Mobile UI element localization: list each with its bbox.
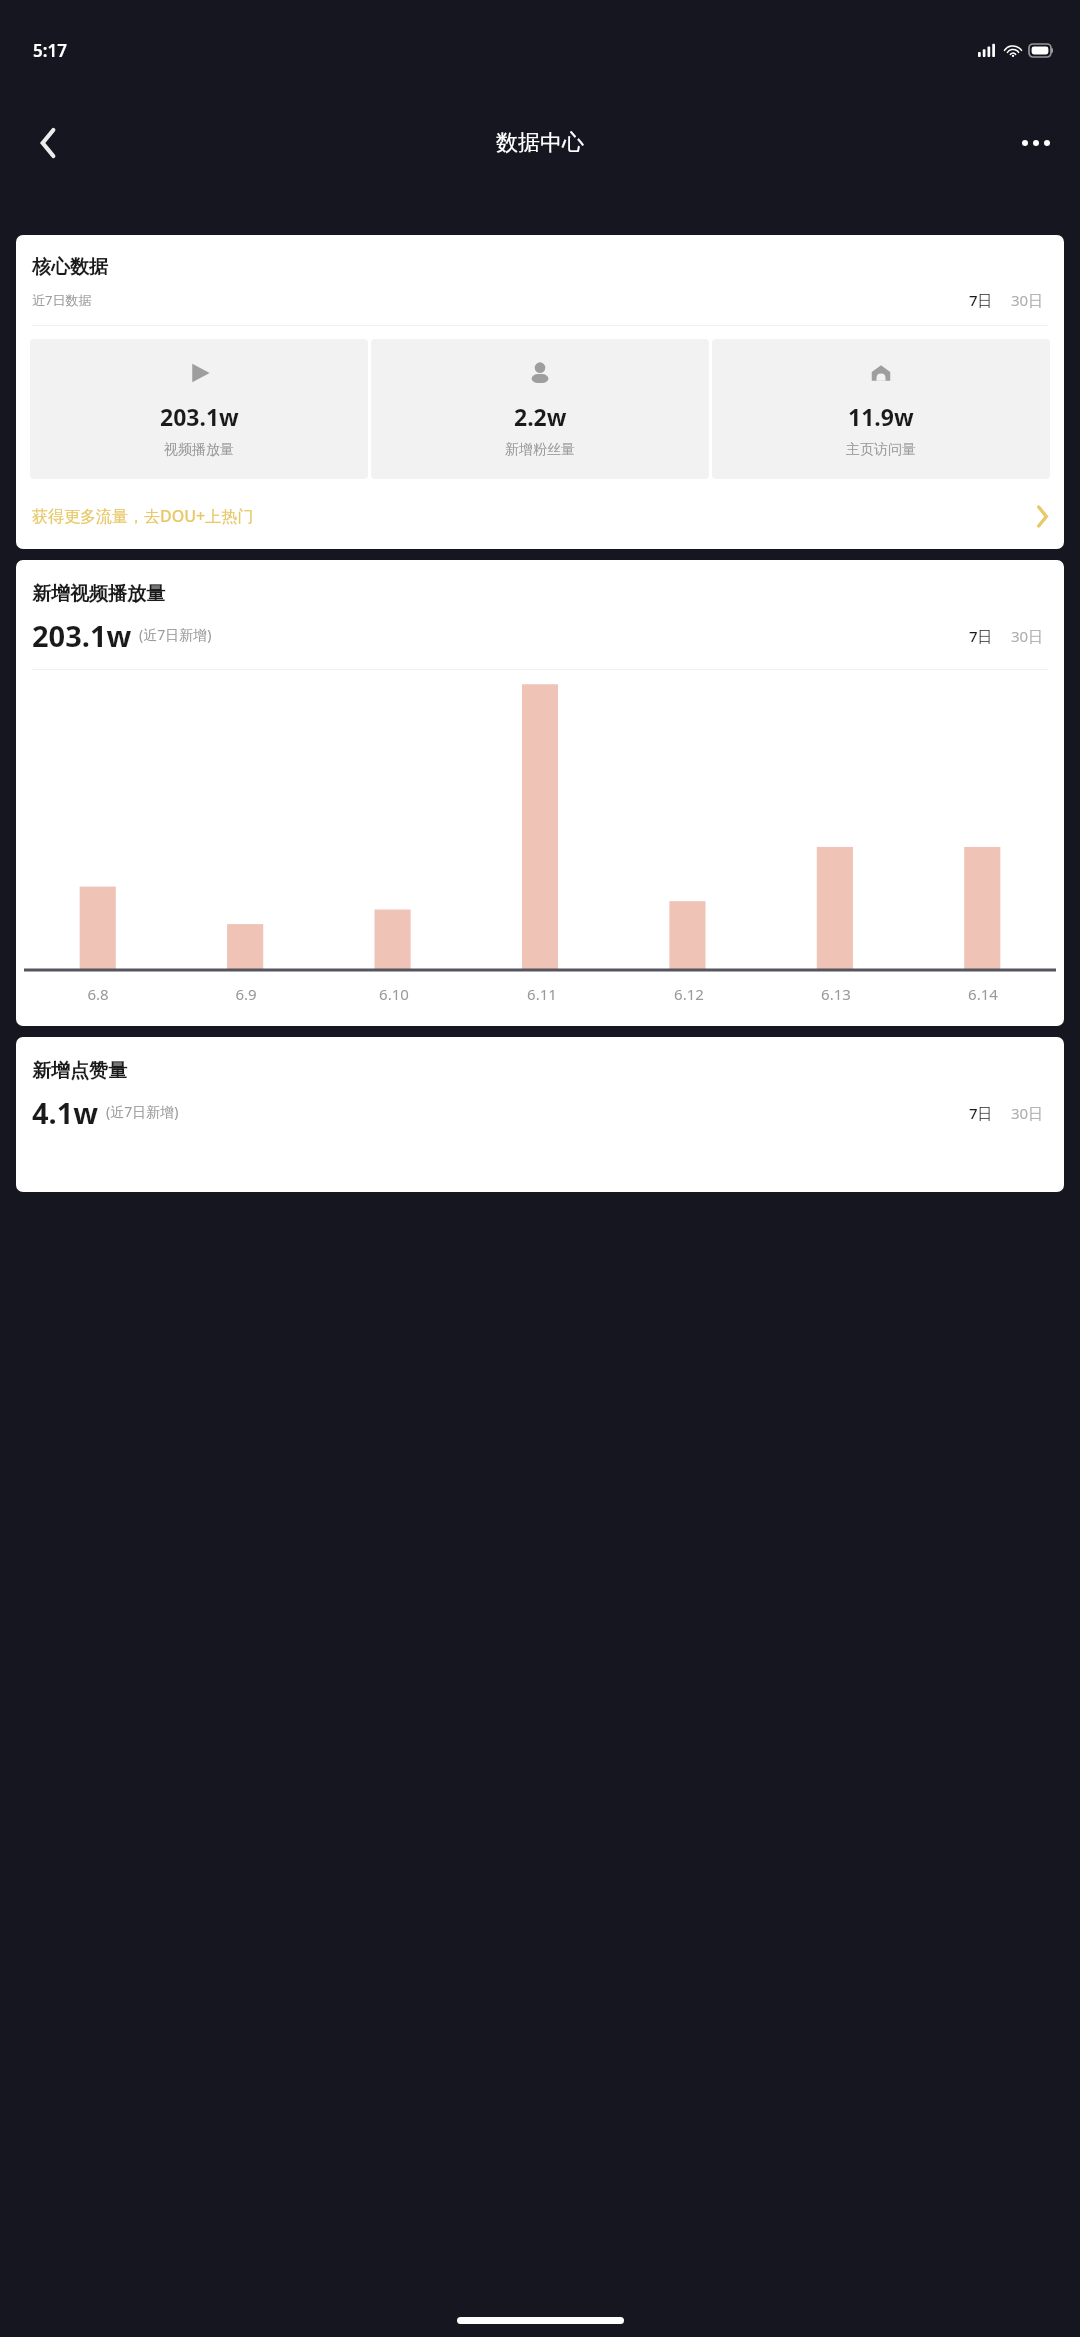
- staticText: 6.8: [87, 984, 109, 1004]
- staticText: 7日: [969, 290, 993, 310]
- staticText: 视频播放量: [164, 441, 234, 459]
- staticText: 6.12: [674, 984, 704, 1004]
- staticText: 203.1w: [32, 616, 132, 655]
- staticText: 7日: [969, 1103, 993, 1123]
- button[interactable]: More options: [1000, 107, 1072, 179]
- staticText: 新增点赞量: [32, 1059, 127, 1083]
- button[interactable]: 30日: [1007, 1100, 1048, 1126]
- staticText: 近7日数据: [32, 291, 92, 309]
- button[interactable]: Back: [12, 107, 84, 179]
- staticText: 6.9: [235, 984, 257, 1004]
- staticText: 6.14: [968, 984, 998, 1004]
- button[interactable]: 11.9w: [712, 339, 1050, 479]
- button[interactable]: 7日: [965, 1100, 997, 1126]
- staticText: 主页访问量: [846, 441, 916, 459]
- button[interactable]: 2.2w: [371, 339, 709, 479]
- staticText: 新增粉丝量: [505, 441, 575, 459]
- staticText: 7日: [969, 626, 993, 646]
- button[interactable]: 7日: [965, 623, 997, 649]
- button[interactable]: 7日: [965, 287, 997, 313]
- staticText: 11.9w: [848, 401, 914, 432]
- staticText: 30日: [1011, 1103, 1044, 1123]
- staticText: 6.11: [527, 984, 557, 1004]
- staticText: 6.13: [821, 984, 851, 1004]
- staticText: (近7日新增): [139, 625, 212, 644]
- button[interactable]: 获得更多流量，去DOU+上热门: [16, 497, 1064, 535]
- staticText: 核心数据: [32, 255, 108, 279]
- staticText: 数据中心: [496, 129, 584, 157]
- button[interactable]: 30日: [1007, 623, 1048, 649]
- staticText: 4.1w: [32, 1093, 99, 1132]
- staticText: 2.2w: [514, 401, 567, 432]
- staticText: 5:17: [33, 39, 67, 62]
- staticText: 203.1w: [160, 401, 239, 432]
- staticText: 30日: [1011, 290, 1044, 310]
- button[interactable]: 30日: [1007, 287, 1048, 313]
- staticText: 获得更多流量，去DOU+上热门: [32, 505, 254, 527]
- staticText: (近7日新增): [106, 1102, 179, 1121]
- staticText: 新增视频播放量: [32, 582, 165, 606]
- staticText: 6.10: [379, 984, 409, 1004]
- staticText: 30日: [1011, 626, 1044, 646]
- button[interactable]: 203.1w: [30, 339, 368, 479]
